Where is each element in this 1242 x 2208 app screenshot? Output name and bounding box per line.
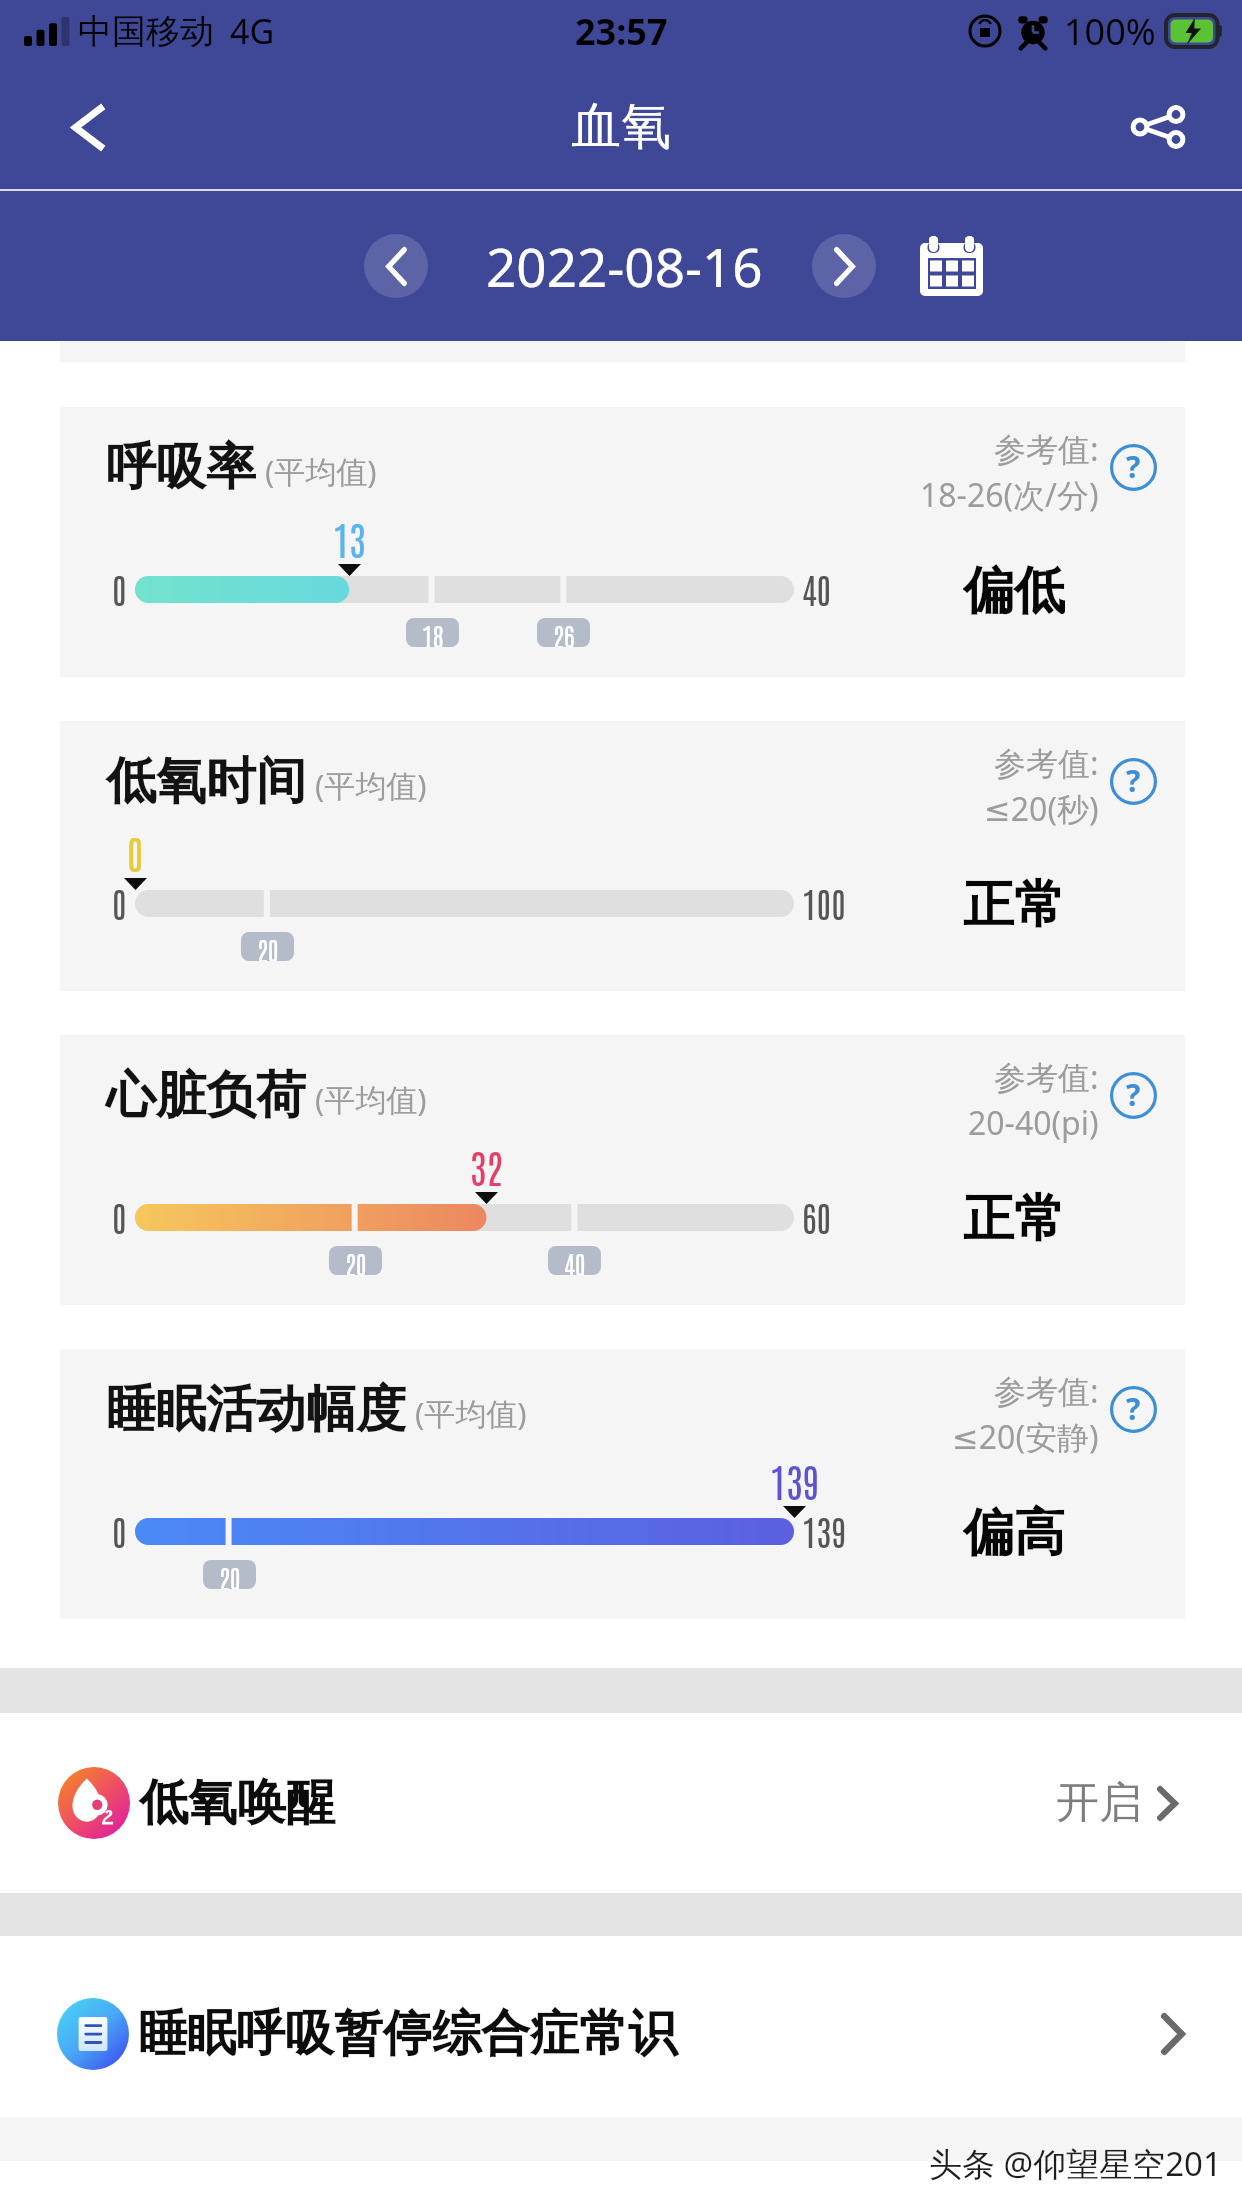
staticText: (平均值) [265,450,377,492]
staticText: 中国移动 [78,10,214,53]
staticText: (平均值) [315,764,427,806]
staticText: 20 [345,1246,367,1275]
staticText: ? [1126,760,1141,801]
staticText: 0 [112,1508,127,1553]
staticText: 偏低 [963,559,1065,619]
staticText: 低氧时间 [106,750,306,813]
staticText: 参考值: [994,427,1099,471]
button[interactable]: Back [48,87,128,167]
staticText: 参考值: [994,1369,1099,1413]
staticText: 40 [802,566,832,611]
staticText: 23:57 [575,7,668,56]
staticText: 0 [112,880,127,925]
staticText: ? [1126,1074,1141,1115]
button[interactable]: 心脏负荷 [60,1035,1185,1305]
staticText: 139 [770,1455,819,1505]
staticText: ? [1126,446,1141,487]
staticText: (平均值) [315,1078,427,1120]
staticText: 头条 @仰望星空201 [929,2141,1222,2186]
staticText: 60 [802,1194,832,1239]
staticText: 32 [470,1141,503,1191]
staticText: 低氧唤醒 [139,1772,335,1834]
staticText: 正常 [963,873,1065,933]
staticText: 13 [333,513,366,563]
button[interactable]: Help [1109,1071,1157,1119]
staticText: 4G [230,8,275,54]
button[interactable]: Help [1109,443,1157,491]
staticText: 0 [112,1194,127,1239]
staticText: 心脏负荷 [106,1064,306,1127]
staticText: ≤20(安静) [952,1415,1099,1459]
button[interactable]: 睡眠呼吸暂停综合症常识 [0,1950,1242,2117]
button[interactable]: 睡眠活动幅度 [60,1349,1185,1619]
staticText: 开启 [1056,1776,1142,1830]
staticText: 参考值: [994,1055,1099,1099]
button[interactable]: Help [1109,1385,1157,1433]
staticText: 2022-08-16 [486,230,763,302]
staticText: 呼吸率 [106,436,256,499]
staticText: 139 [802,1508,846,1553]
button[interactable]: Next day [812,234,876,298]
staticText: 睡眠活动幅度 [106,1378,406,1441]
button[interactable]: Previous day [364,234,428,298]
staticText: 参考值: [994,741,1099,785]
staticText: 100% [1064,7,1156,56]
staticText: 0 [127,827,144,877]
button[interactable]: Help [1109,757,1157,805]
staticText: 40 [564,1246,586,1275]
staticText: 偏高 [963,1501,1065,1561]
staticText: 18-26(次/分) [920,473,1099,517]
staticText: ? [1126,1388,1141,1429]
staticText: (平均值) [415,1392,527,1434]
staticText: ≤20(秒) [984,787,1099,831]
staticText: 0 [112,566,127,611]
staticText: 正常 [963,1187,1065,1247]
button[interactable]: 低氧时间 [60,721,1185,991]
staticText: 20 [257,932,279,961]
staticText: 睡眠呼吸暂停综合症常识 [138,2003,677,2065]
staticText: 18 [422,618,444,647]
staticText: 血氧 [571,95,671,158]
button[interactable]: 呼吸率 [60,407,1185,677]
button[interactable]: Share [1116,87,1196,167]
staticText: 100 [802,880,846,925]
button[interactable]: Calendar [914,228,990,304]
staticText: 20 [219,1560,241,1589]
staticText: 20-40(pi) [968,1101,1099,1145]
button[interactable]: 低氧唤醒 [0,1713,1242,1893]
staticText: 26 [553,618,575,647]
